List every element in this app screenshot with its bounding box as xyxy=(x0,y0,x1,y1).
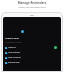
staticText: Team standup xyxy=(8,56,57,59)
button[interactable]: Evening walk xyxy=(5,60,57,65)
button[interactable]: Wake up xyxy=(5,45,57,50)
staticText: Manage Reminders xyxy=(0,1,64,5)
staticText: Evening walk xyxy=(8,61,57,64)
staticText: Today's plan xyxy=(5,36,20,39)
staticText: Wake up xyxy=(8,46,54,49)
staticText: Take vitamins xyxy=(8,51,57,54)
button[interactable]: Team standup xyxy=(5,55,57,60)
staticText: 4 reminders active xyxy=(5,41,22,44)
button[interactable]: Take vitamins xyxy=(5,50,57,55)
staticText: Create, edit and toggle alerts xyxy=(0,6,64,9)
